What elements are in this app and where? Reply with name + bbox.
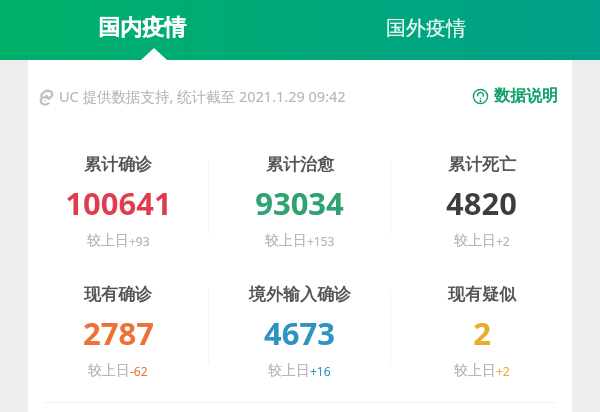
staticText: 数据说明	[494, 86, 558, 106]
staticText: +2	[496, 233, 510, 249]
staticText: +93	[129, 233, 150, 249]
button[interactable]: 现有确诊	[28, 284, 208, 382]
button[interactable]: 现有疑似	[391, 284, 572, 382]
button[interactable]: 累计确诊	[28, 154, 208, 252]
staticText: 较上日	[88, 362, 130, 380]
staticText: 累计死亡	[448, 154, 516, 175]
staticText: 境外输入确诊	[249, 284, 351, 305]
staticText: +2	[496, 363, 510, 379]
staticText: 较上日	[265, 232, 307, 250]
staticText: 2787	[83, 312, 154, 354]
other: 数据说明	[472, 88, 489, 105]
staticText: 较上日	[454, 362, 496, 380]
button[interactable]: 数据说明	[472, 86, 558, 106]
staticText: +16	[310, 363, 331, 379]
button[interactable]: 国外疫情	[386, 16, 466, 41]
staticText: +153	[307, 233, 335, 249]
staticText: 较上日	[268, 362, 310, 380]
staticText: 较上日	[87, 232, 129, 250]
staticText: 4820	[446, 182, 517, 224]
staticText: 现有疑似	[448, 284, 516, 305]
staticText: -62	[130, 363, 148, 379]
staticText: 累计治愈	[266, 154, 334, 175]
staticText: 2	[473, 312, 491, 354]
button[interactable]: 累计死亡	[391, 154, 572, 252]
button[interactable]: 国内疫情	[98, 14, 186, 42]
button[interactable]: 累计治愈	[209, 154, 390, 252]
button[interactable]: 境外输入确诊	[209, 284, 390, 382]
staticText: 现有确诊	[84, 284, 152, 305]
staticText: 93034	[255, 182, 344, 224]
staticText: 4673	[264, 312, 335, 354]
staticText: UC 提供数据支持, 统计截至 2021.1.29 09:42	[59, 86, 346, 106]
staticText: 累计确诊	[84, 154, 152, 175]
staticText: 较上日	[454, 232, 496, 250]
staticText: 100641	[65, 182, 172, 224]
